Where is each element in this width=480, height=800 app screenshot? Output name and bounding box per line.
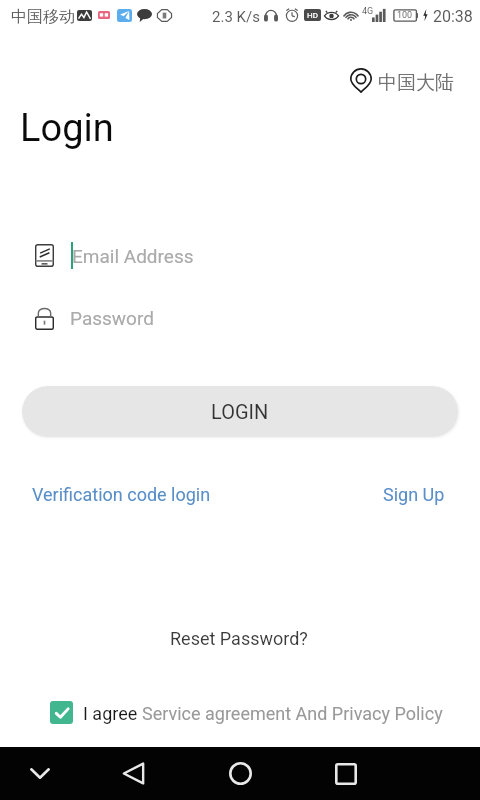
button[interactable]: 中国大陆 — [346, 64, 458, 97]
staticText: Password — [70, 307, 154, 329]
button[interactable]: Reset Password? — [170, 628, 308, 649]
button[interactable]: Home — [210, 747, 270, 800]
button[interactable]: Verification code login — [32, 484, 211, 505]
button[interactable]: Sign Up — [383, 484, 445, 505]
staticText: Login — [20, 106, 114, 151]
staticText: I agree — [83, 703, 138, 724]
staticText: 2.3 K/s — [212, 8, 260, 26]
staticText: 20:38 — [433, 7, 473, 26]
staticText: Email Address — [72, 245, 194, 267]
staticText: LOGIN — [211, 400, 269, 423]
button[interactable]: Back — [103, 747, 163, 800]
button[interactable]: Hide keyboard — [10, 747, 70, 800]
staticText: 4G — [362, 6, 374, 17]
button[interactable]: Service agreement And Privacy Policy — [142, 703, 443, 724]
staticText: HD — [307, 11, 318, 20]
button[interactable]: LOGIN — [22, 386, 458, 437]
button[interactable]: Recents — [316, 747, 376, 800]
staticText: 中国大陆 — [378, 71, 454, 95]
staticText: 中国移动 — [11, 7, 75, 27]
button[interactable]: I agree checkbox — [50, 701, 73, 724]
staticText: 100 — [397, 10, 413, 21]
